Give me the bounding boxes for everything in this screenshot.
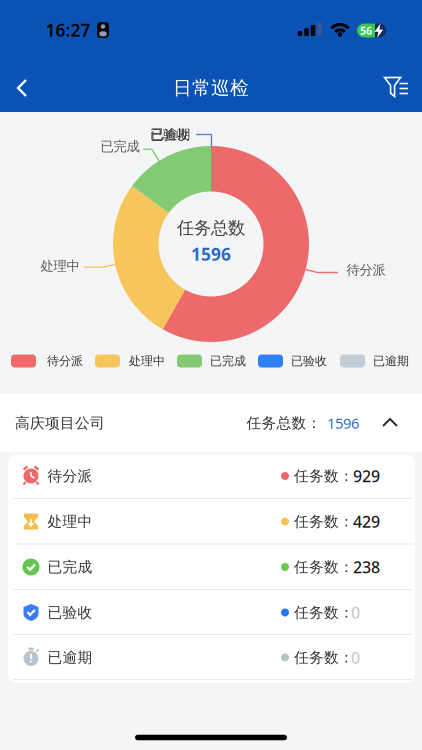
staticText: 任务数： [294, 512, 354, 530]
staticText: 56 [360, 23, 372, 38]
staticText: 已验收 [47, 603, 92, 621]
staticText: 已验收 [291, 354, 327, 368]
staticText: 任务总数 [177, 217, 245, 239]
staticText: 任务数： [294, 467, 354, 485]
staticText: 16:27 [45, 18, 90, 41]
button[interactable]: 返回 [2, 66, 42, 110]
staticText: 处理中 [40, 258, 79, 274]
button[interactable]: 高庆项目公司 [0, 394, 422, 452]
button[interactable]: 待分派 [8, 453, 415, 498]
button[interactable]: 已逾期 [8, 635, 415, 680]
staticText: 已逾期 [47, 648, 92, 666]
staticText: 已逾期 [373, 354, 409, 368]
staticText: 处理中 [129, 354, 165, 368]
button[interactable]: 已验收 [8, 590, 415, 635]
staticText: 高庆项目公司 [15, 414, 105, 432]
staticText: 已完成 [47, 558, 92, 576]
staticText: 238 [353, 556, 380, 578]
staticText: 929 [353, 465, 380, 487]
staticText: 日常巡检 [173, 76, 249, 99]
staticText: 已完成 [100, 138, 139, 155]
staticText: 0 [351, 602, 360, 623]
staticText: 任务数： [294, 603, 354, 621]
staticText: 待分派 [47, 467, 92, 485]
staticText: 已完成 [210, 354, 246, 368]
button[interactable]: 处理中 [8, 499, 415, 544]
staticText: 已验收 [150, 127, 189, 143]
staticText: 任务总数： [246, 414, 321, 432]
staticText: 已逾期 [151, 126, 190, 142]
button[interactable]: 已完成 [8, 544, 415, 589]
staticText: 待分派 [346, 262, 385, 278]
staticText: 待分派 [47, 354, 83, 368]
staticText: 1596 [327, 413, 359, 433]
staticText: 1596 [191, 242, 231, 265]
staticText: 0 [351, 647, 360, 668]
staticText: 任务数： [294, 558, 354, 576]
staticText: 任务数： [294, 648, 354, 666]
staticText: 429 [353, 511, 380, 532]
button[interactable]: 筛选 [374, 65, 418, 109]
staticText: 处理中 [47, 512, 92, 530]
